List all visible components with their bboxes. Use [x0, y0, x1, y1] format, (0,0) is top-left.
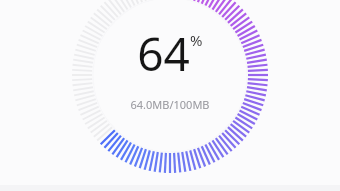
staticText: 64.0MB/100MB: [130, 97, 210, 112]
button[interactable]: 64: [130, 22, 210, 112]
staticText: %: [190, 30, 203, 50]
staticText: 64: [137, 22, 190, 85]
button[interactable]: Storage usage gauge, 64 percent: [0, 0, 340, 191]
